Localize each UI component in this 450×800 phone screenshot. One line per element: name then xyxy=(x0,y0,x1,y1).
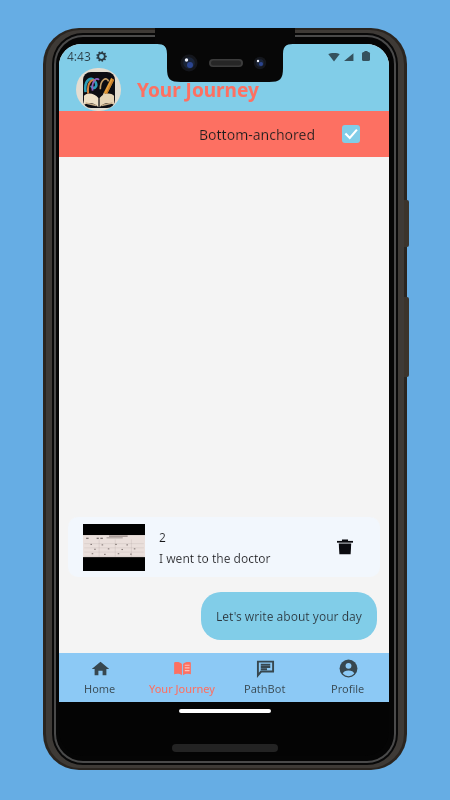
button[interactable]: PathBot xyxy=(223,653,306,702)
button[interactable]: App icon xyxy=(76,68,121,111)
button[interactable]: Home xyxy=(59,653,141,702)
button[interactable]: Profile xyxy=(306,653,389,702)
staticText: I went to the doctor xyxy=(159,550,271,566)
staticText: Home xyxy=(84,681,116,696)
staticText: PathBot xyxy=(244,681,286,696)
staticText: Let's write about your day xyxy=(216,608,362,624)
staticText: Profile xyxy=(331,681,365,696)
staticText: Bottom-anchored xyxy=(199,125,316,144)
button[interactable]: Your Journey xyxy=(141,653,223,702)
staticText: 4:43 xyxy=(67,48,91,64)
button[interactable]: Let's write about your day xyxy=(201,592,377,640)
staticText: 2 xyxy=(159,529,166,545)
button[interactable]: Bottom-anchored toggle xyxy=(342,125,360,143)
button[interactable]: 2 xyxy=(68,517,380,577)
staticText: Your Journey xyxy=(137,77,259,103)
staticText: Your Journey xyxy=(149,681,215,696)
button[interactable]: Delete xyxy=(328,530,362,564)
